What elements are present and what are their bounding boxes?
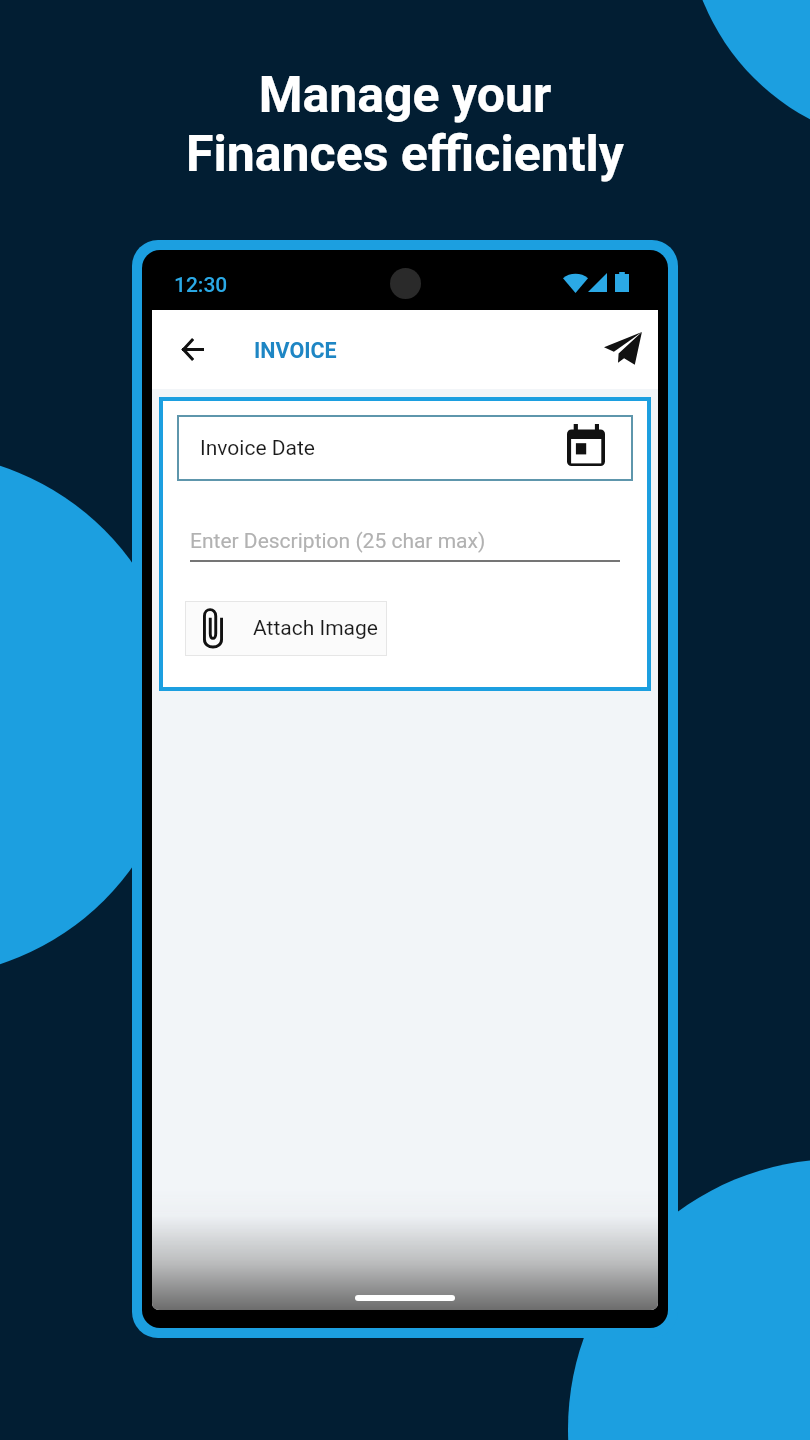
staticText: INVOICE xyxy=(254,338,337,363)
button[interactable]: Back xyxy=(167,323,219,375)
button[interactable]: Attach Image xyxy=(185,601,387,656)
staticText: Finances efficiently xyxy=(0,125,810,184)
button[interactable]: Enter Description (25 char max) xyxy=(190,526,620,572)
staticText: Invoice Date xyxy=(200,436,315,461)
staticText: Enter Description (25 char max) xyxy=(190,529,486,554)
staticText: Manage your xyxy=(0,66,810,125)
button[interactable]: Invoice Date xyxy=(177,415,633,481)
staticText: Attach Image xyxy=(253,616,378,641)
staticText: 12:30 xyxy=(174,273,228,298)
button[interactable]: Send xyxy=(578,310,630,389)
